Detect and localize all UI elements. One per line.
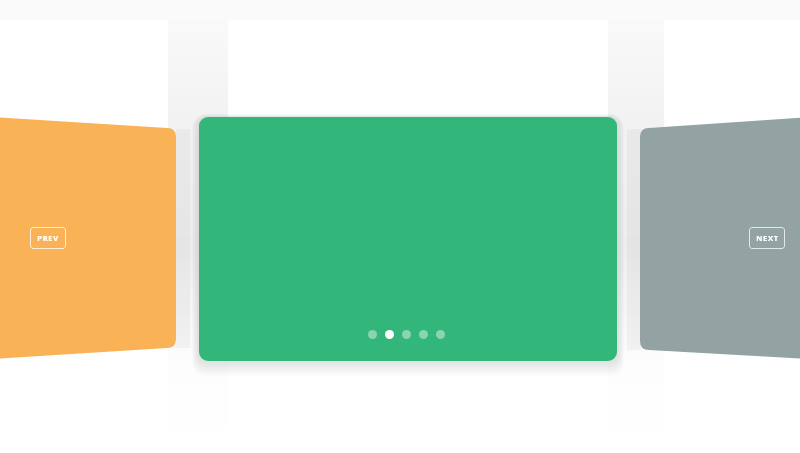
staticText: NEXT <box>756 233 779 243</box>
staticText: PREV <box>37 233 59 243</box>
button[interactable]: Slide indicators <box>368 330 445 339</box>
button[interactable]: NEXT <box>749 227 785 249</box>
button[interactable] <box>402 330 411 339</box>
button[interactable] <box>436 330 445 339</box>
button[interactable] <box>419 330 428 339</box>
button[interactable]: PREV <box>30 227 66 249</box>
button[interactable] <box>385 330 394 339</box>
button[interactable]: Current slide <box>199 117 617 361</box>
button[interactable] <box>368 330 377 339</box>
